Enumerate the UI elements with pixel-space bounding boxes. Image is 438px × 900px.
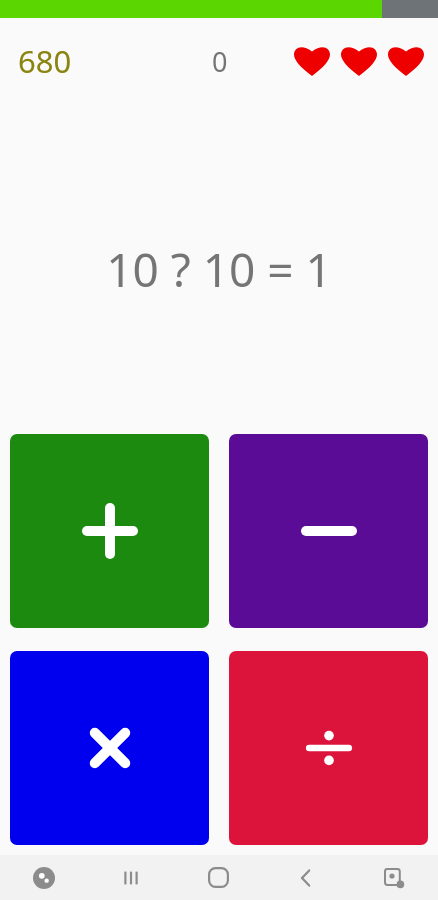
staticText: 10 ? 10 = 1 (106, 238, 332, 301)
staticText: 680 (18, 40, 72, 82)
button[interactable]: Recent apps (87, 855, 174, 900)
staticText: 0 (212, 43, 228, 80)
button[interactable]: Assistant (0, 855, 87, 900)
button[interactable]: Minus (229, 434, 428, 628)
button[interactable]: Divide (229, 651, 428, 845)
button[interactable]: Multiply (10, 651, 209, 845)
button[interactable]: Back (262, 855, 350, 900)
button[interactable]: Screenshot (350, 855, 438, 900)
button[interactable]: Plus (10, 434, 209, 628)
button[interactable]: Home (174, 855, 262, 900)
